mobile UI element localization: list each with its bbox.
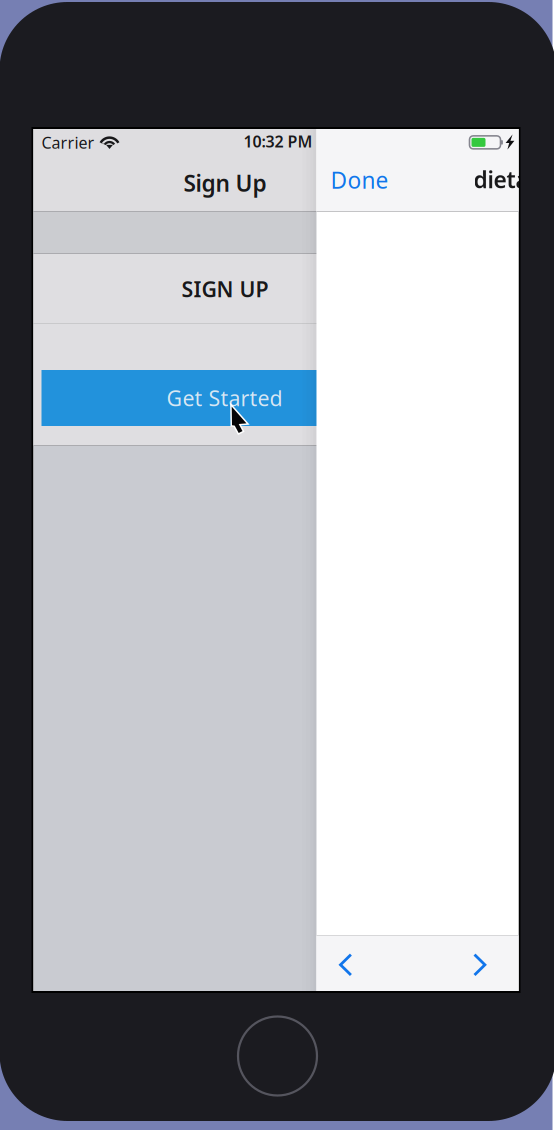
staticText: 10:32 PM xyxy=(243,131,312,152)
staticText: Done xyxy=(330,165,388,195)
staticText: Carrier xyxy=(41,132,94,153)
button[interactable]: Done xyxy=(322,157,396,203)
button[interactable]: Get Started xyxy=(41,370,407,426)
staticText: SIGN UP xyxy=(181,275,268,303)
button[interactable]: Forward xyxy=(459,940,500,990)
staticText: Sign Up xyxy=(183,168,266,198)
staticText: dietaryapp.com xyxy=(473,164,554,194)
staticText: Get Started xyxy=(166,384,282,412)
button[interactable]: Back xyxy=(325,940,366,990)
